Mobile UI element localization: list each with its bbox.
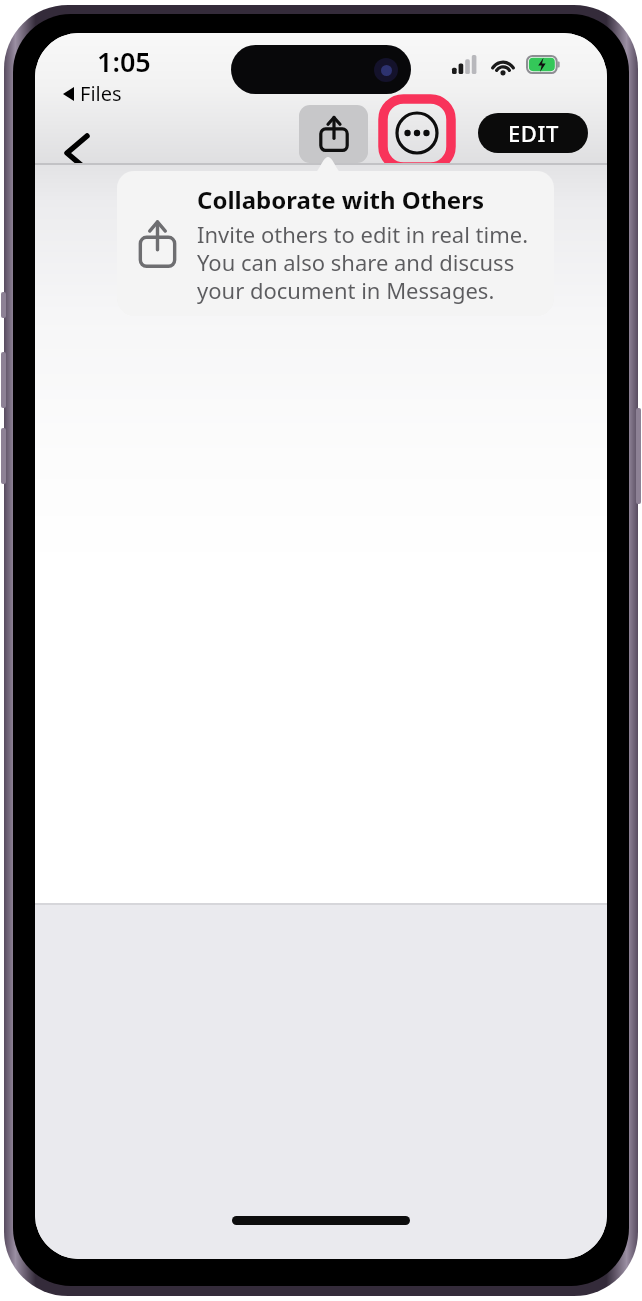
- button[interactable]: Collaborate with Others: [117, 171, 554, 316]
- staticText: EDIT: [508, 118, 559, 148]
- button[interactable]: EDIT: [478, 113, 588, 153]
- staticText: Invite others to edit in real time. You …: [197, 219, 529, 305]
- button[interactable]: Share: [299, 105, 368, 163]
- button[interactable]: Back: [49, 125, 105, 181]
- button[interactable]: More options: [389, 105, 445, 161]
- staticText: Collaborate with Others: [197, 183, 484, 216]
- staticText: Files: [80, 80, 122, 107]
- staticText: 1:05: [97, 43, 151, 80]
- button[interactable]: Files: [59, 78, 126, 109]
